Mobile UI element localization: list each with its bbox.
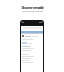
staticText: Discover versatile <box>21 5 44 9</box>
staticText: the chat inside everything <box>22 10 43 13</box>
